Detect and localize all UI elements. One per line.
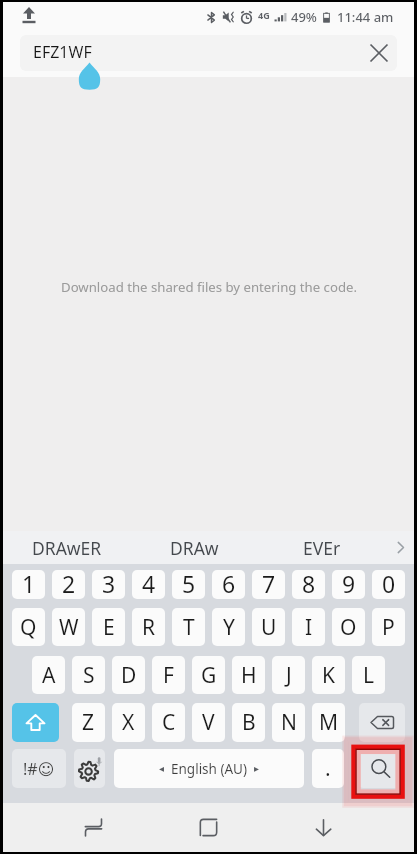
staticText: T	[183, 613, 195, 642]
button[interactable]: L	[352, 656, 385, 694]
staticText: ▸	[254, 763, 260, 775]
staticText: A	[42, 661, 56, 690]
button[interactable]: Keyboard settings	[74, 749, 105, 788]
button[interactable]: ◂	[114, 749, 304, 788]
staticText: W	[59, 613, 79, 642]
staticText: ◂	[159, 763, 165, 775]
button[interactable]: X	[112, 703, 145, 742]
button[interactable]: N	[272, 703, 305, 742]
staticText: 49%	[291, 8, 317, 26]
staticText: 1	[22, 570, 36, 597]
button[interactable]: A	[32, 656, 65, 694]
staticText: DRAwER	[32, 536, 102, 560]
button[interactable]: Hide keyboard	[266, 803, 381, 852]
staticText: 8	[302, 570, 316, 597]
staticText: X	[122, 708, 135, 737]
button[interactable]: C	[152, 703, 185, 742]
button[interactable]: 6	[212, 570, 245, 599]
staticText: 2	[62, 570, 76, 597]
button[interactable]: 5	[172, 570, 205, 599]
button[interactable]: I	[292, 608, 325, 646]
button[interactable]: F	[152, 656, 185, 694]
button[interactable]: EFZ1WF	[20, 35, 397, 71]
staticText: J	[286, 661, 292, 690]
button[interactable]: Clear text	[361, 35, 397, 71]
staticText: 7	[262, 570, 276, 597]
staticText: Q	[20, 613, 37, 642]
staticText: Z	[82, 708, 95, 737]
staticText: H	[241, 661, 257, 690]
staticText: 0	[382, 570, 396, 597]
button[interactable]: T	[172, 608, 205, 646]
staticText: E	[103, 613, 115, 642]
staticText: 4G	[258, 9, 270, 21]
button[interactable]: 0	[372, 570, 405, 599]
staticText: P	[382, 613, 395, 642]
staticText: 11:44 am	[337, 8, 394, 26]
button[interactable]: 9	[332, 570, 365, 599]
button[interactable]: W	[52, 608, 85, 646]
button[interactable]: E	[92, 608, 125, 646]
staticText: 3	[102, 570, 116, 597]
button[interactable]: B	[232, 703, 265, 742]
button[interactable]: Search	[358, 749, 402, 788]
staticText: U	[261, 613, 277, 642]
button[interactable]: Home	[151, 803, 266, 852]
button[interactable]: Recent apps	[36, 803, 151, 852]
staticText: G	[201, 661, 217, 690]
staticText: O	[340, 613, 357, 642]
button[interactable]: Q	[12, 608, 45, 646]
staticText: B	[242, 708, 256, 737]
staticText: !#☺	[23, 758, 55, 780]
staticText: V	[202, 708, 215, 737]
button[interactable]: S	[72, 656, 105, 694]
button[interactable]: 2	[52, 570, 85, 599]
staticText: 4	[142, 570, 156, 597]
staticText: C	[162, 708, 176, 737]
staticText: English (AU)	[171, 760, 248, 778]
staticText: K	[322, 661, 335, 690]
button[interactable]: 8	[292, 570, 325, 599]
staticText: S	[83, 661, 95, 690]
button[interactable]: Shift	[12, 703, 59, 742]
button[interactable]: Z	[72, 703, 105, 742]
staticText: .	[325, 754, 331, 783]
button[interactable]: !#☺	[12, 749, 66, 788]
button[interactable]: J	[272, 656, 305, 694]
button[interactable]: K	[312, 656, 345, 694]
staticText: Download the shared files by entering th…	[61, 278, 357, 296]
button[interactable]: 3	[92, 570, 125, 599]
staticText: R	[142, 613, 156, 642]
button[interactable]: U	[252, 608, 285, 646]
staticText: 6	[222, 570, 236, 597]
staticText: F	[163, 661, 174, 690]
button[interactable]: Backspace	[359, 703, 405, 742]
button[interactable]: More suggestions	[386, 531, 414, 564]
button[interactable]: M	[312, 703, 345, 742]
button[interactable]: H	[232, 656, 265, 694]
staticText: N	[281, 708, 297, 737]
staticText: 5	[182, 570, 196, 597]
button[interactable]: 7	[252, 570, 285, 599]
staticText: EFZ1WF	[33, 41, 92, 63]
staticText: Y	[223, 613, 235, 642]
staticText: M	[319, 708, 339, 737]
button[interactable]: G	[192, 656, 225, 694]
button[interactable]: DRAwER	[3, 531, 130, 564]
button[interactable]: .	[312, 749, 344, 788]
staticText: DRAw	[170, 536, 219, 560]
button[interactable]: P	[372, 608, 405, 646]
button[interactable]: 4	[132, 570, 165, 599]
button[interactable]: D	[112, 656, 145, 694]
button[interactable]: O	[332, 608, 365, 646]
button[interactable]: 1	[12, 570, 45, 599]
staticText: L	[363, 661, 375, 690]
staticText: EVEr	[303, 536, 341, 560]
button[interactable]: R	[132, 608, 165, 646]
button[interactable]: DRAw	[130, 531, 258, 564]
staticText: I	[305, 613, 313, 642]
button[interactable]: V	[192, 703, 225, 742]
button[interactable]: EVEr	[258, 531, 386, 564]
staticText: 9	[342, 570, 356, 597]
button[interactable]: Y	[212, 608, 245, 646]
